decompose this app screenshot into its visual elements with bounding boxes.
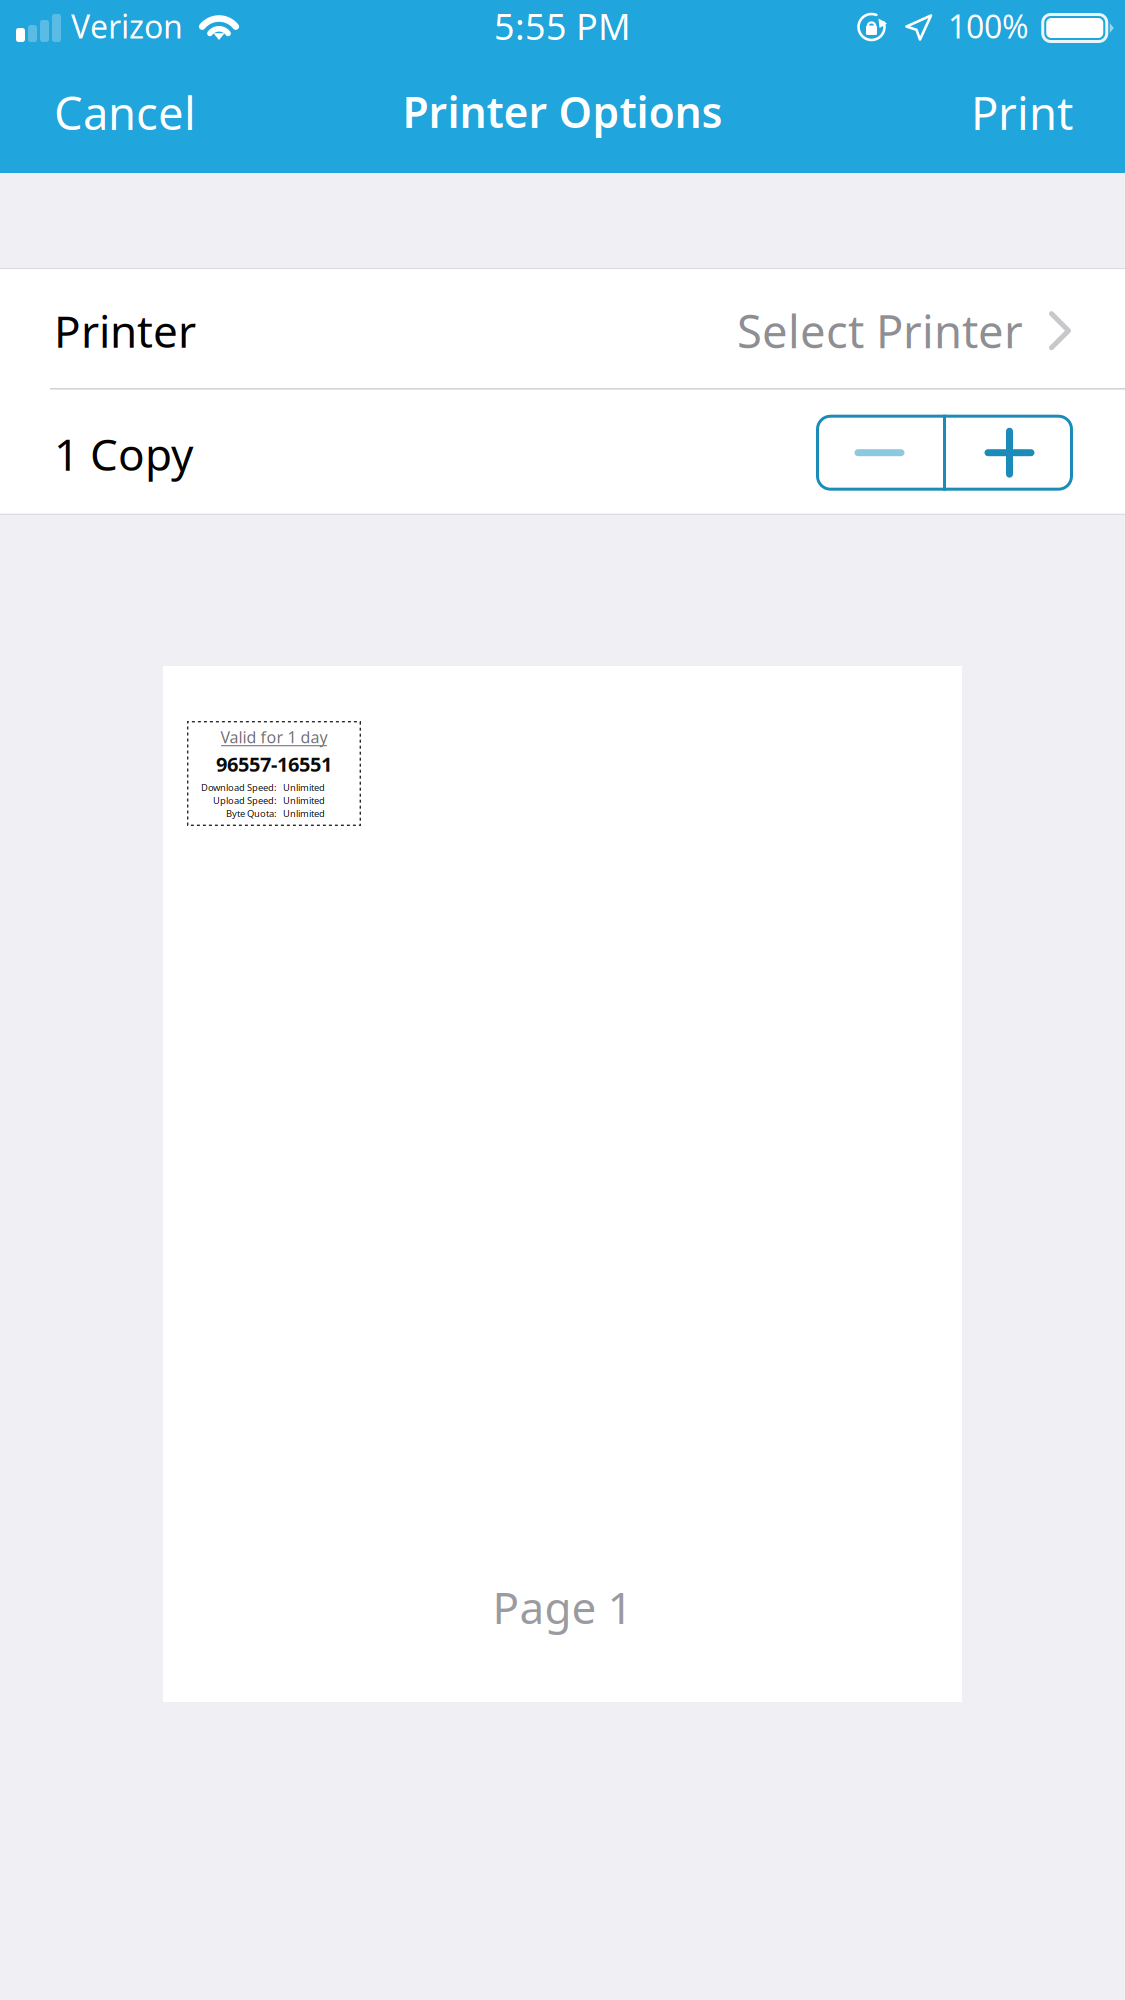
staticText: Cancel [54, 82, 196, 143]
staticText: Printer [54, 301, 196, 360]
staticText: 1 Copy [54, 424, 193, 483]
button[interactable]: Decrease number of copies [816, 415, 943, 491]
staticText: 96557-16551 [216, 751, 332, 777]
staticText: Page 1 [492, 1578, 632, 1636]
staticText: Download Speed: [201, 781, 277, 794]
button[interactable]: Increase number of copies [946, 415, 1073, 491]
staticText: Select Printer [737, 301, 1023, 361]
button[interactable]: Print [923, 60, 1123, 173]
staticText: Unlimited [283, 794, 325, 807]
staticText: Byte Quota: [226, 807, 277, 820]
staticText: Print [971, 82, 1073, 143]
button[interactable]: Printer [0, 269, 1125, 388]
staticText: Unlimited [283, 807, 325, 820]
staticText: 100% [948, 5, 1029, 47]
staticText: Verizon [71, 5, 183, 47]
staticText: Valid for 1 day [220, 726, 327, 748]
staticText: Upload Speed: [213, 794, 277, 807]
button[interactable]: Cancel [0, 60, 244, 173]
staticText: Unlimited [283, 781, 325, 794]
staticText: 5:55 PM [494, 2, 631, 50]
staticText: Printer Options [402, 83, 722, 140]
